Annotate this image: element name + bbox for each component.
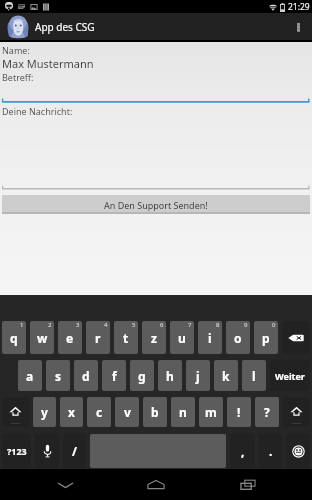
staticText: 0 <box>272 321 276 329</box>
staticText: 21:29 <box>288 1 310 13</box>
staticText: , <box>241 443 245 459</box>
button[interactable]: y <box>33 397 56 427</box>
staticText: h <box>166 368 174 384</box>
button[interactable]: t <box>114 321 138 354</box>
button[interactable]: i <box>198 321 222 354</box>
staticText: k <box>222 368 230 384</box>
staticText: r <box>95 330 101 346</box>
button[interactable]: shift <box>283 397 310 427</box>
staticText: 2 <box>48 321 52 329</box>
button[interactable]: m <box>199 397 223 427</box>
staticText: ? <box>264 404 270 420</box>
button[interactable]: a <box>18 360 42 391</box>
staticText: Deine Nachricht: <box>2 105 73 117</box>
staticText: 1 <box>20 321 24 329</box>
button[interactable]: b <box>143 397 167 427</box>
staticText: 6 <box>160 321 164 329</box>
staticText: l <box>252 368 256 384</box>
button[interactable]: p <box>254 321 278 354</box>
button[interactable]: / <box>63 434 86 468</box>
staticText: / <box>72 443 77 459</box>
staticText: 5 <box>132 321 136 329</box>
staticText: e <box>66 330 74 346</box>
button[interactable]: u <box>170 321 194 354</box>
staticText: m <box>205 404 217 420</box>
button[interactable]: l <box>242 360 266 391</box>
button[interactable]: v <box>115 397 139 427</box>
button[interactable]: f <box>102 360 126 391</box>
staticText: c <box>96 404 103 420</box>
staticText: 3 <box>76 321 80 329</box>
button[interactable]: c <box>87 397 111 427</box>
button[interactable]: z <box>142 321 166 354</box>
button[interactable]: g <box>130 360 154 391</box>
button[interactable]: ? <box>255 397 279 427</box>
button[interactable]: emoji <box>286 434 310 468</box>
staticText: w <box>37 330 48 346</box>
button[interactable]: Hide keyboard <box>38 469 92 500</box>
staticText: 8 <box>216 321 220 329</box>
button[interactable]: . <box>259 434 282 468</box>
button[interactable]: shift <box>2 397 29 427</box>
button[interactable]: mic <box>35 434 59 468</box>
staticText: Betreff: <box>2 71 34 83</box>
staticText: 9 <box>244 321 248 329</box>
staticText: 4 <box>104 321 108 329</box>
staticText: ! <box>237 404 241 420</box>
button[interactable]: d <box>74 360 98 391</box>
button[interactable]: w <box>30 321 54 354</box>
button[interactable]: k <box>214 360 238 391</box>
button[interactable]: j <box>186 360 210 391</box>
button[interactable]: x <box>60 397 83 427</box>
staticText: d <box>82 368 90 384</box>
button[interactable]: q <box>2 321 26 354</box>
button[interactable]: More options <box>284 13 312 40</box>
staticText: i <box>208 330 212 346</box>
staticText: App des CSG <box>35 20 95 34</box>
button[interactable] <box>0 82 312 103</box>
staticText: Weiter <box>275 370 305 382</box>
staticText: v <box>124 404 131 420</box>
button[interactable]: backspace <box>282 321 310 354</box>
staticText: o <box>234 330 242 346</box>
staticText: f <box>112 368 117 384</box>
staticText: Max Mustermann <box>2 56 94 71</box>
button[interactable]: o <box>226 321 250 354</box>
staticText: n <box>179 404 187 420</box>
staticText: ?123 <box>7 445 27 457</box>
staticText: An Den Support Senden! <box>104 199 208 211</box>
button[interactable]: ! <box>227 397 251 427</box>
staticText: q <box>10 330 18 346</box>
button[interactable]: s <box>46 360 70 391</box>
button[interactable]: e <box>58 321 82 354</box>
button[interactable]: Recent apps <box>221 469 275 500</box>
staticText: . <box>269 443 273 459</box>
button[interactable]: An Den Support Senden! <box>2 195 310 214</box>
button[interactable]: Weiter <box>270 360 310 391</box>
staticText: z <box>151 330 157 346</box>
staticText: 7 <box>188 321 192 329</box>
button[interactable]: , <box>230 434 255 468</box>
staticText: u <box>178 330 186 346</box>
staticText: t <box>123 330 129 346</box>
staticText: j <box>196 368 200 384</box>
button[interactable]: r <box>86 321 110 354</box>
staticText: b <box>151 404 159 420</box>
staticText: p <box>262 330 270 346</box>
staticText: g <box>138 368 146 384</box>
staticText: y <box>41 404 48 420</box>
staticText: x <box>68 404 75 420</box>
button[interactable]: ?123 <box>2 434 31 468</box>
staticText: Name: <box>2 44 30 56</box>
button[interactable] <box>0 117 312 190</box>
button[interactable]: h <box>158 360 182 391</box>
staticText: a <box>26 368 34 384</box>
button[interactable]: n <box>171 397 195 427</box>
staticText: s <box>55 368 62 384</box>
button[interactable]: Home <box>129 469 183 500</box>
